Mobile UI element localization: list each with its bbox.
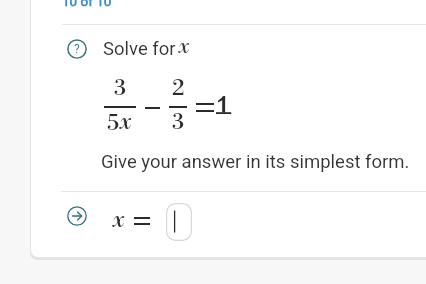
button[interactable]: Help: [67, 39, 87, 59]
staticText: ?: [74, 42, 80, 56]
staticText: 10 of 10: [62, 0, 112, 9]
staticText: Solve for: [103, 38, 176, 60]
button[interactable]: Answer input: [166, 203, 192, 241]
staticText: 3: [114, 75, 127, 103]
button[interactable]: Submit answer: [67, 206, 87, 226]
staticText: x: [178, 34, 190, 60]
staticText: 2: [172, 75, 185, 103]
staticText: 3: [172, 109, 185, 137]
staticText: x: [119, 108, 132, 137]
staticText: 5: [107, 110, 120, 138]
staticText: x: [112, 206, 125, 235]
staticText: Give your answer in its simplest form.: [101, 151, 410, 173]
